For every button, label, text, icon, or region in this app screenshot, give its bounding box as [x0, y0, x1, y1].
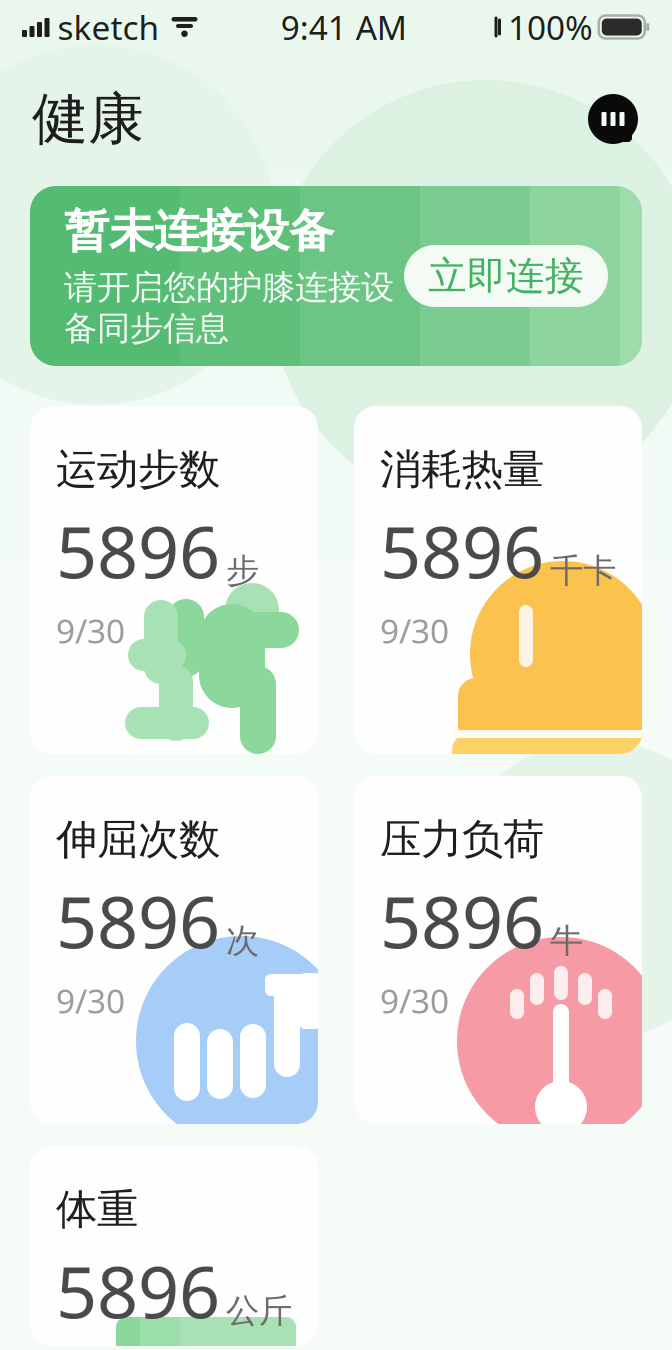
staticText: 消耗热量 [380, 444, 544, 495]
staticText: 次 [226, 920, 259, 961]
staticText: 9/30 [380, 608, 449, 653]
staticText: 体重 [56, 1184, 138, 1235]
staticText: 健康 [32, 85, 144, 153]
staticText: sketch [57, 5, 159, 49]
staticText: 千卡 [550, 550, 616, 591]
staticText: 立即连接 [428, 252, 584, 300]
staticText: 100% [508, 5, 593, 49]
staticText: 牛 [550, 920, 583, 961]
staticText: 5896 [56, 1243, 220, 1338]
staticText: 5896 [56, 873, 220, 968]
staticText: 请开启您的护膝连接设备同步信息 [64, 267, 394, 349]
staticText: 步 [226, 550, 259, 591]
staticText: 9/30 [56, 608, 125, 653]
button[interactable]: 消耗热量 [354, 406, 642, 754]
staticText: 9/30 [380, 978, 449, 1023]
staticText: 9:41 AM [281, 5, 407, 49]
button[interactable]: 体重 [30, 1146, 318, 1346]
staticText: 伸屈次数 [56, 814, 220, 865]
staticText: 5896 [380, 503, 544, 598]
button[interactable]: 压力负荷 [354, 776, 642, 1124]
staticText: 公斤 [226, 1290, 292, 1331]
button[interactable]: 运动步数 [30, 406, 318, 754]
button[interactable]: 客服消息 [586, 92, 640, 146]
staticText: 5896 [380, 873, 544, 968]
staticText: 暂未连接设备 [64, 203, 334, 259]
staticText: 压力负荷 [380, 814, 544, 865]
button[interactable]: 伸屈次数 [30, 776, 318, 1124]
staticText: 5896 [56, 503, 220, 598]
staticText: 运动步数 [56, 444, 220, 495]
button[interactable]: 立即连接 [404, 245, 608, 307]
staticText: 9/30 [56, 978, 125, 1023]
